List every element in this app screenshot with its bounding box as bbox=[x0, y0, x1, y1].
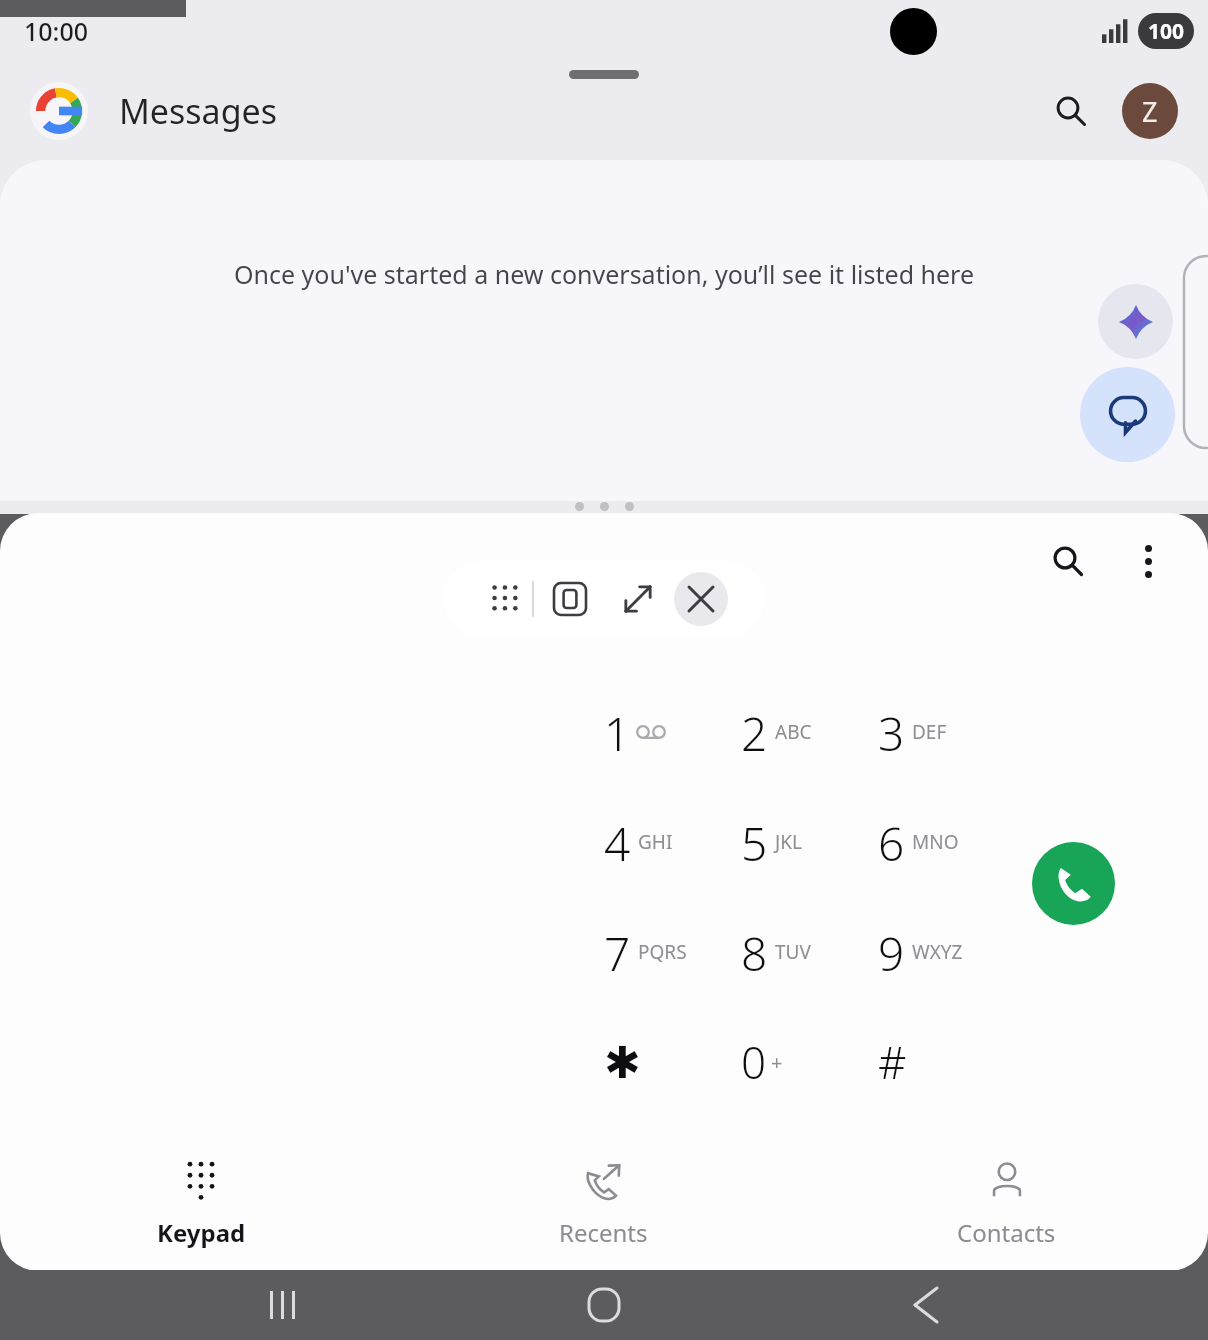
button[interactable]: Gemini bbox=[1098, 284, 1173, 359]
staticText: Messages bbox=[119, 88, 278, 134]
button[interactable]: 2 bbox=[741, 702, 878, 762]
button[interactable]: 5 bbox=[741, 812, 878, 872]
button[interactable]: Expand bbox=[612, 573, 664, 625]
button[interactable]: Recent apps bbox=[242, 1270, 322, 1340]
button[interactable]: Pop-up view bbox=[544, 573, 596, 625]
staticText: + bbox=[771, 1049, 783, 1076]
staticText: 10:00 bbox=[24, 14, 89, 48]
staticText: DEF bbox=[912, 719, 947, 745]
staticText: 3 bbox=[878, 702, 905, 762]
staticText: Z bbox=[1142, 93, 1158, 130]
button[interactable]: Back bbox=[886, 1270, 966, 1340]
button[interactable]: 6 bbox=[878, 812, 1015, 872]
button[interactable]: 0 bbox=[741, 1032, 878, 1092]
button[interactable]: ✱ bbox=[604, 1032, 741, 1092]
button[interactable]: 1 bbox=[604, 702, 741, 762]
button[interactable]: Keypad bbox=[0, 1121, 402, 1249]
button[interactable]: 3 bbox=[878, 702, 1015, 762]
button[interactable]: Close bbox=[674, 572, 728, 626]
staticText: 8 bbox=[741, 922, 768, 982]
staticText: 5 bbox=[741, 812, 768, 872]
button[interactable]: Call bbox=[1032, 842, 1115, 925]
button[interactable]: Recents bbox=[402, 1121, 805, 1249]
staticText: Once you've started a new conversation, … bbox=[234, 257, 974, 291]
staticText: 100 bbox=[1148, 17, 1185, 46]
button[interactable]: Search bbox=[1040, 533, 1096, 589]
staticText: MNO bbox=[912, 829, 959, 855]
staticText: WXYZ bbox=[912, 939, 963, 965]
staticText: 7 bbox=[604, 922, 631, 982]
button[interactable]: 9 bbox=[878, 922, 1015, 982]
button[interactable]: 7 bbox=[604, 922, 741, 982]
staticText: ABC bbox=[775, 719, 812, 745]
staticText: JKL bbox=[775, 829, 802, 855]
staticText: 6 bbox=[878, 812, 905, 872]
button[interactable]: Contacts bbox=[805, 1121, 1208, 1249]
button[interactable]: Google bbox=[30, 82, 88, 140]
button[interactable]: App grid bbox=[480, 573, 532, 625]
staticText: 9 bbox=[878, 922, 905, 982]
staticText: PQRS bbox=[638, 939, 687, 965]
staticText: GHI bbox=[638, 829, 673, 855]
staticText: 0 bbox=[741, 1032, 767, 1092]
staticText: 4 bbox=[604, 812, 631, 872]
button[interactable]: # bbox=[878, 1032, 1015, 1092]
button[interactable]: Start chat bbox=[1080, 367, 1175, 462]
button[interactable]: Home bbox=[564, 1270, 644, 1340]
staticText: Recents bbox=[559, 1216, 648, 1249]
button[interactable]: 4 bbox=[604, 812, 741, 872]
staticText: 2 bbox=[741, 702, 768, 762]
staticText: Contacts bbox=[957, 1216, 1056, 1249]
button[interactable]: 8 bbox=[741, 922, 878, 982]
staticText: # bbox=[878, 1032, 907, 1092]
staticText: Keypad bbox=[157, 1216, 246, 1249]
staticText: 1 bbox=[604, 702, 631, 762]
button[interactable]: Account bbox=[1122, 83, 1178, 139]
button[interactable]: More options bbox=[1120, 533, 1176, 589]
button[interactable]: Search bbox=[1042, 82, 1100, 140]
staticText: ✱ bbox=[604, 1037, 641, 1088]
staticText: TUV bbox=[775, 939, 811, 965]
